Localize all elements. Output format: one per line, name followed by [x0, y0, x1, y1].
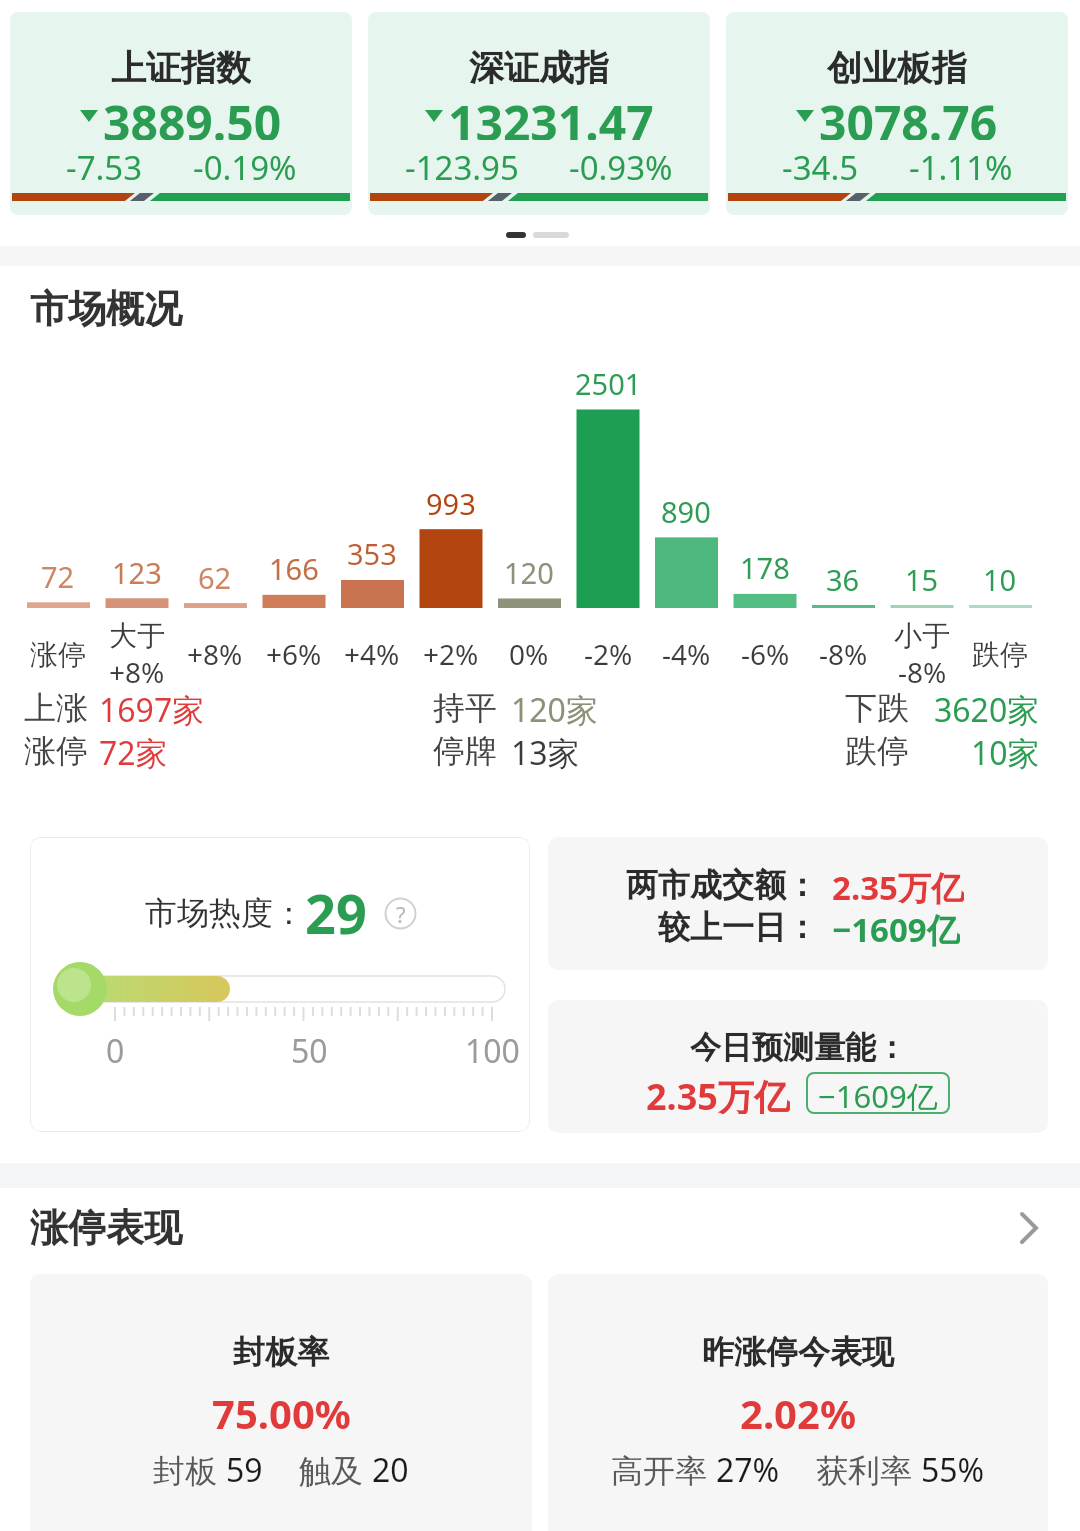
staticText: 100 — [465, 1029, 520, 1065]
staticText: 62 — [198, 558, 232, 594]
staticText: 10 — [983, 560, 1017, 596]
staticText: -34.5 — [782, 145, 859, 185]
staticText: 涨停表现 — [30, 1204, 182, 1252]
staticText: 跌停 — [845, 731, 909, 771]
staticText: +8% — [109, 653, 165, 689]
staticText: -8% — [819, 635, 868, 673]
staticText: 890 — [661, 492, 711, 528]
staticText: 10家 — [971, 731, 1040, 775]
staticText: 市场热度： — [145, 893, 305, 933]
staticText: 166 — [269, 549, 319, 585]
staticText: 353 — [347, 534, 397, 570]
staticText: 0% — [509, 635, 549, 673]
button[interactable]: 创业板指 — [726, 12, 1068, 215]
staticText: −1609亿 — [832, 907, 960, 947]
staticText: -4% — [662, 635, 711, 673]
staticText: 59 — [226, 1448, 263, 1488]
staticText: 上证指数 — [111, 46, 251, 86]
staticText: 75.00% — [212, 1386, 351, 1434]
staticText: 3078.76 — [819, 90, 998, 140]
staticText: 停牌 — [433, 731, 497, 771]
button[interactable] — [30, 1274, 532, 1531]
staticText: 55% — [921, 1448, 985, 1488]
staticText: 3620家 — [934, 688, 1040, 732]
staticText: 2.35万亿 — [832, 865, 964, 905]
staticText: 上涨 — [24, 688, 88, 728]
staticText: 120家 — [511, 688, 598, 732]
staticText: 两市成交额： — [626, 865, 818, 905]
staticText: 昨涨停今表现 — [702, 1332, 894, 1372]
button[interactable] — [548, 1274, 1048, 1531]
staticText: 封板率 — [233, 1332, 329, 1372]
staticText: 1697家 — [99, 688, 205, 732]
staticText: -1.11% — [909, 145, 1013, 185]
staticText: 大于 — [109, 618, 165, 653]
button[interactable] — [548, 837, 1048, 970]
staticText: -6% — [741, 635, 790, 673]
staticText: 今日预测量能： — [690, 1028, 907, 1067]
staticText: 72 — [41, 557, 75, 593]
staticText: -0.93% — [569, 145, 673, 185]
staticText: 993 — [426, 484, 476, 520]
button[interactable]: 市场热度： — [30, 837, 530, 1132]
staticText: +4% — [344, 635, 400, 673]
staticText: 较上一日： — [658, 907, 818, 947]
button[interactable] — [548, 1000, 1048, 1133]
staticText: 50 — [291, 1029, 328, 1065]
staticText: 创业板指 — [827, 46, 967, 86]
staticText: 持平 — [433, 688, 497, 728]
staticText: +6% — [266, 635, 322, 673]
staticText: -2% — [584, 635, 633, 673]
staticText: −1609亿 — [818, 1075, 938, 1111]
staticText: 涨停 — [24, 731, 88, 771]
staticText: 27% — [716, 1448, 780, 1488]
staticText: ? — [396, 899, 406, 929]
staticText: 29 — [305, 876, 367, 950]
staticText: 涨停 — [30, 637, 86, 672]
staticText: 72家 — [99, 731, 168, 775]
staticText: 获利率 — [816, 1448, 921, 1488]
staticText: 2.02% — [740, 1386, 856, 1434]
staticText: 高开率 — [611, 1448, 716, 1488]
staticText: 跌停 — [972, 637, 1028, 672]
staticText: +2% — [423, 635, 479, 673]
staticText: 深证成指 — [469, 46, 609, 86]
staticText: 市场概况 — [30, 285, 182, 333]
staticText: 触及 — [299, 1448, 372, 1488]
staticText: 13家 — [511, 731, 580, 775]
staticText: -123.95 — [405, 145, 519, 185]
staticText: 下跌 — [845, 688, 909, 728]
staticText: 120 — [504, 553, 554, 589]
staticText: 0 — [106, 1029, 125, 1065]
staticText: 13231.47 — [448, 90, 654, 140]
staticText: 20 — [372, 1448, 409, 1488]
staticText: +8% — [187, 635, 243, 673]
staticText: 小于 — [894, 618, 950, 653]
staticText: 178 — [740, 548, 790, 584]
staticText: -7.53 — [66, 145, 143, 185]
staticText: 2.35万亿 — [646, 1072, 790, 1114]
staticText: -8% — [898, 653, 947, 689]
button[interactable]: 上证指数 — [10, 12, 352, 215]
staticText: 2501 — [575, 364, 642, 400]
button[interactable]: 深证成指 — [368, 12, 710, 215]
staticText: 3889.50 — [103, 90, 282, 140]
staticText: 123 — [112, 553, 162, 589]
staticText: 15 — [905, 560, 939, 596]
staticText: -0.19% — [193, 145, 297, 185]
button[interactable]: 涨停表现 — [0, 1200, 1080, 1256]
staticText: 36 — [826, 560, 860, 596]
staticText: 封板 — [153, 1448, 226, 1488]
